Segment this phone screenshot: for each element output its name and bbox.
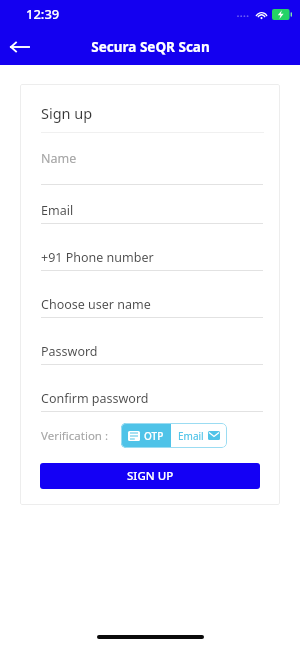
button[interactable]: Confirm password — [20, 390, 280, 412]
staticText: Sign up — [41, 103, 93, 123]
button[interactable]: OTP — [121, 423, 171, 448]
staticText: Confirm password — [41, 390, 149, 407]
staticText: Secura SeQR Scan — [91, 38, 210, 56]
button[interactable]: +91 Phone number — [20, 249, 280, 271]
staticText: +91 Phone number — [41, 249, 154, 266]
staticText: OTP — [144, 429, 164, 443]
button[interactable]: Email — [20, 202, 280, 224]
staticText: Choose user name — [41, 296, 151, 313]
staticText: SIGN UP — [127, 468, 174, 484]
button[interactable]: Choose user name — [20, 296, 280, 318]
staticText: Name — [41, 150, 77, 167]
staticText: Email — [178, 429, 204, 443]
staticText: 12:39 — [26, 5, 60, 23]
staticText: Password — [41, 343, 98, 360]
button[interactable]: SIGN UP — [40, 463, 260, 489]
staticText: Email — [41, 202, 74, 219]
button[interactable]: Name — [20, 150, 280, 185]
staticText: Verification : — [41, 428, 109, 444]
button[interactable]: Back — [0, 28, 40, 65]
button[interactable]: Password — [20, 343, 280, 365]
button[interactable]: Email — [171, 423, 227, 448]
